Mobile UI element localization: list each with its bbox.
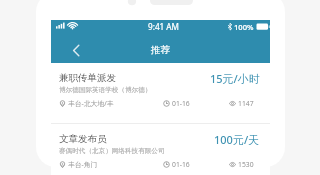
staticText: 文章发布员 [59, 133, 214, 145]
staticText: 丰台-北大地/丰 [68, 99, 114, 108]
button[interactable]: 兼职传单派发 [51, 63, 270, 123]
staticText: 1530 [238, 160, 254, 169]
staticText: 1147 [238, 99, 254, 108]
staticText: 兼职传单派发 [59, 72, 210, 84]
staticText: 博尔德国际英语学校（博尔德） [59, 86, 152, 94]
button[interactable]: 文章发布员 [51, 124, 270, 175]
staticText: 推荐 [151, 44, 170, 56]
button[interactable]: Back [64, 36, 88, 60]
staticText: 100元/天 [214, 132, 260, 145]
staticText: 01-16 [172, 99, 190, 108]
staticText: 丰台-角门 [68, 160, 98, 169]
staticText: 15元/小时 [210, 71, 260, 84]
staticText: 100% [234, 22, 254, 32]
staticText: 赛偶时代（北京）网络科技有限公司 [59, 147, 165, 155]
staticText: 01-16 [172, 160, 190, 169]
staticText: 9:41 AM [148, 21, 180, 32]
